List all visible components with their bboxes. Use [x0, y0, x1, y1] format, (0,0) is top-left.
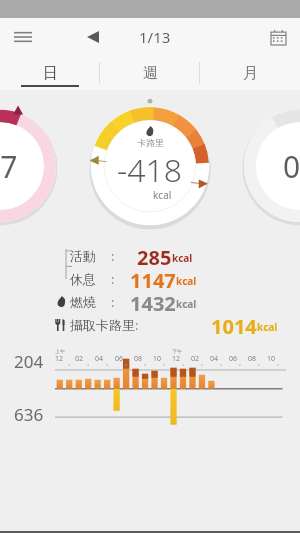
staticText: : [135, 316, 139, 334]
staticText: kcal [176, 274, 197, 288]
staticText: 攝取卡路里 [70, 317, 135, 333]
staticText: 285 [137, 244, 172, 267]
button[interactable]: Menu [6, 20, 40, 54]
staticText: 04 [95, 354, 104, 364]
staticText: -418 [117, 148, 183, 192]
button[interactable]: 休息 [52, 267, 300, 290]
button[interactable]: 日 [0, 56, 100, 90]
staticText: 06 [229, 354, 238, 364]
staticText: 日 [43, 64, 58, 83]
button[interactable]: Calendar [262, 21, 294, 53]
staticText: 1147 [130, 267, 176, 290]
staticText: 下午 [172, 348, 182, 354]
staticText: : [111, 293, 115, 311]
staticText: 08 [134, 354, 143, 364]
staticText: 休息 [70, 271, 96, 287]
staticText: 08 [248, 354, 257, 364]
button[interactable]: Previous [78, 22, 108, 52]
button[interactable]: 05 [242, 108, 300, 224]
staticText: 02 [75, 354, 84, 364]
staticText: 週 [143, 64, 158, 83]
staticText: 204 [14, 350, 44, 373]
staticText: kcal [257, 320, 278, 334]
button[interactable]: 燃燒 [52, 290, 300, 313]
staticText: 上午 [55, 348, 65, 354]
staticText: kcal [172, 251, 193, 265]
staticText: 02 [191, 354, 200, 364]
staticText: : [111, 270, 115, 288]
staticText: 05 [283, 146, 300, 187]
staticText: 12 [172, 354, 181, 364]
staticText: 10 [153, 354, 162, 364]
staticText: 12 [55, 354, 64, 364]
staticText: 1432 [130, 290, 176, 313]
staticText: 月 [243, 64, 258, 83]
staticText: 27 [0, 146, 18, 187]
button[interactable]: 週 [100, 56, 200, 90]
staticText: 636 [14, 403, 44, 426]
staticText: 1/13 [139, 27, 171, 47]
button[interactable]: 27 [0, 108, 58, 224]
button[interactable]: 月 [200, 56, 300, 90]
staticText: 06 [115, 354, 124, 364]
staticText: kcal [153, 188, 172, 202]
staticText: 10 [267, 354, 276, 364]
button[interactable]: 卡路里 [88, 104, 212, 228]
staticText: 活動 [70, 248, 96, 264]
staticText: kcal [176, 297, 197, 311]
staticText: 卡路里 [137, 137, 164, 148]
staticText: 1014 [211, 313, 257, 336]
button[interactable]: 活動 [52, 244, 300, 267]
staticText: 04 [210, 354, 219, 364]
staticText: : [111, 247, 115, 265]
button[interactable]: 攝取卡路里 [52, 313, 300, 336]
staticText: 燃燒 [70, 294, 96, 310]
